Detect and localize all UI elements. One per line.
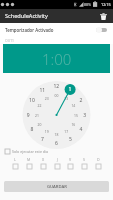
button[interactable]: GUARDAR [4, 181, 109, 192]
staticText: Temporizador Activado [5, 27, 54, 33]
staticText: S [83, 157, 85, 162]
staticText: ScheduleActivity [5, 12, 48, 20]
button[interactable]: V [66, 157, 74, 169]
button[interactable]: Temporizador Activado [0, 23, 113, 37]
button[interactable]: S [80, 157, 88, 169]
button[interactable]: J [53, 157, 61, 169]
button[interactable]: M [25, 157, 33, 169]
staticText: GUARDAR [47, 184, 67, 190]
staticText: Solo ejecutar este dia [12, 149, 49, 154]
other: Toggle timer [94, 23, 110, 37]
staticText: J [57, 157, 58, 162]
button[interactable]: Solo ejecutar este dia [5, 147, 113, 155]
staticText: L [14, 157, 16, 162]
button[interactable]: D [94, 157, 102, 169]
staticText: OUT1 [5, 38, 14, 43]
staticText: M [27, 157, 31, 162]
staticText: 88% [84, 2, 92, 7]
button[interactable]: Delete [96, 9, 110, 23]
staticText: X [42, 157, 45, 162]
button[interactable]: X [39, 157, 47, 169]
staticText: 1:00 [42, 49, 72, 69]
staticText: 12:15 [101, 2, 111, 7]
button[interactable]: L [11, 157, 19, 169]
staticText: D [97, 157, 100, 162]
staticText: V [69, 157, 72, 162]
